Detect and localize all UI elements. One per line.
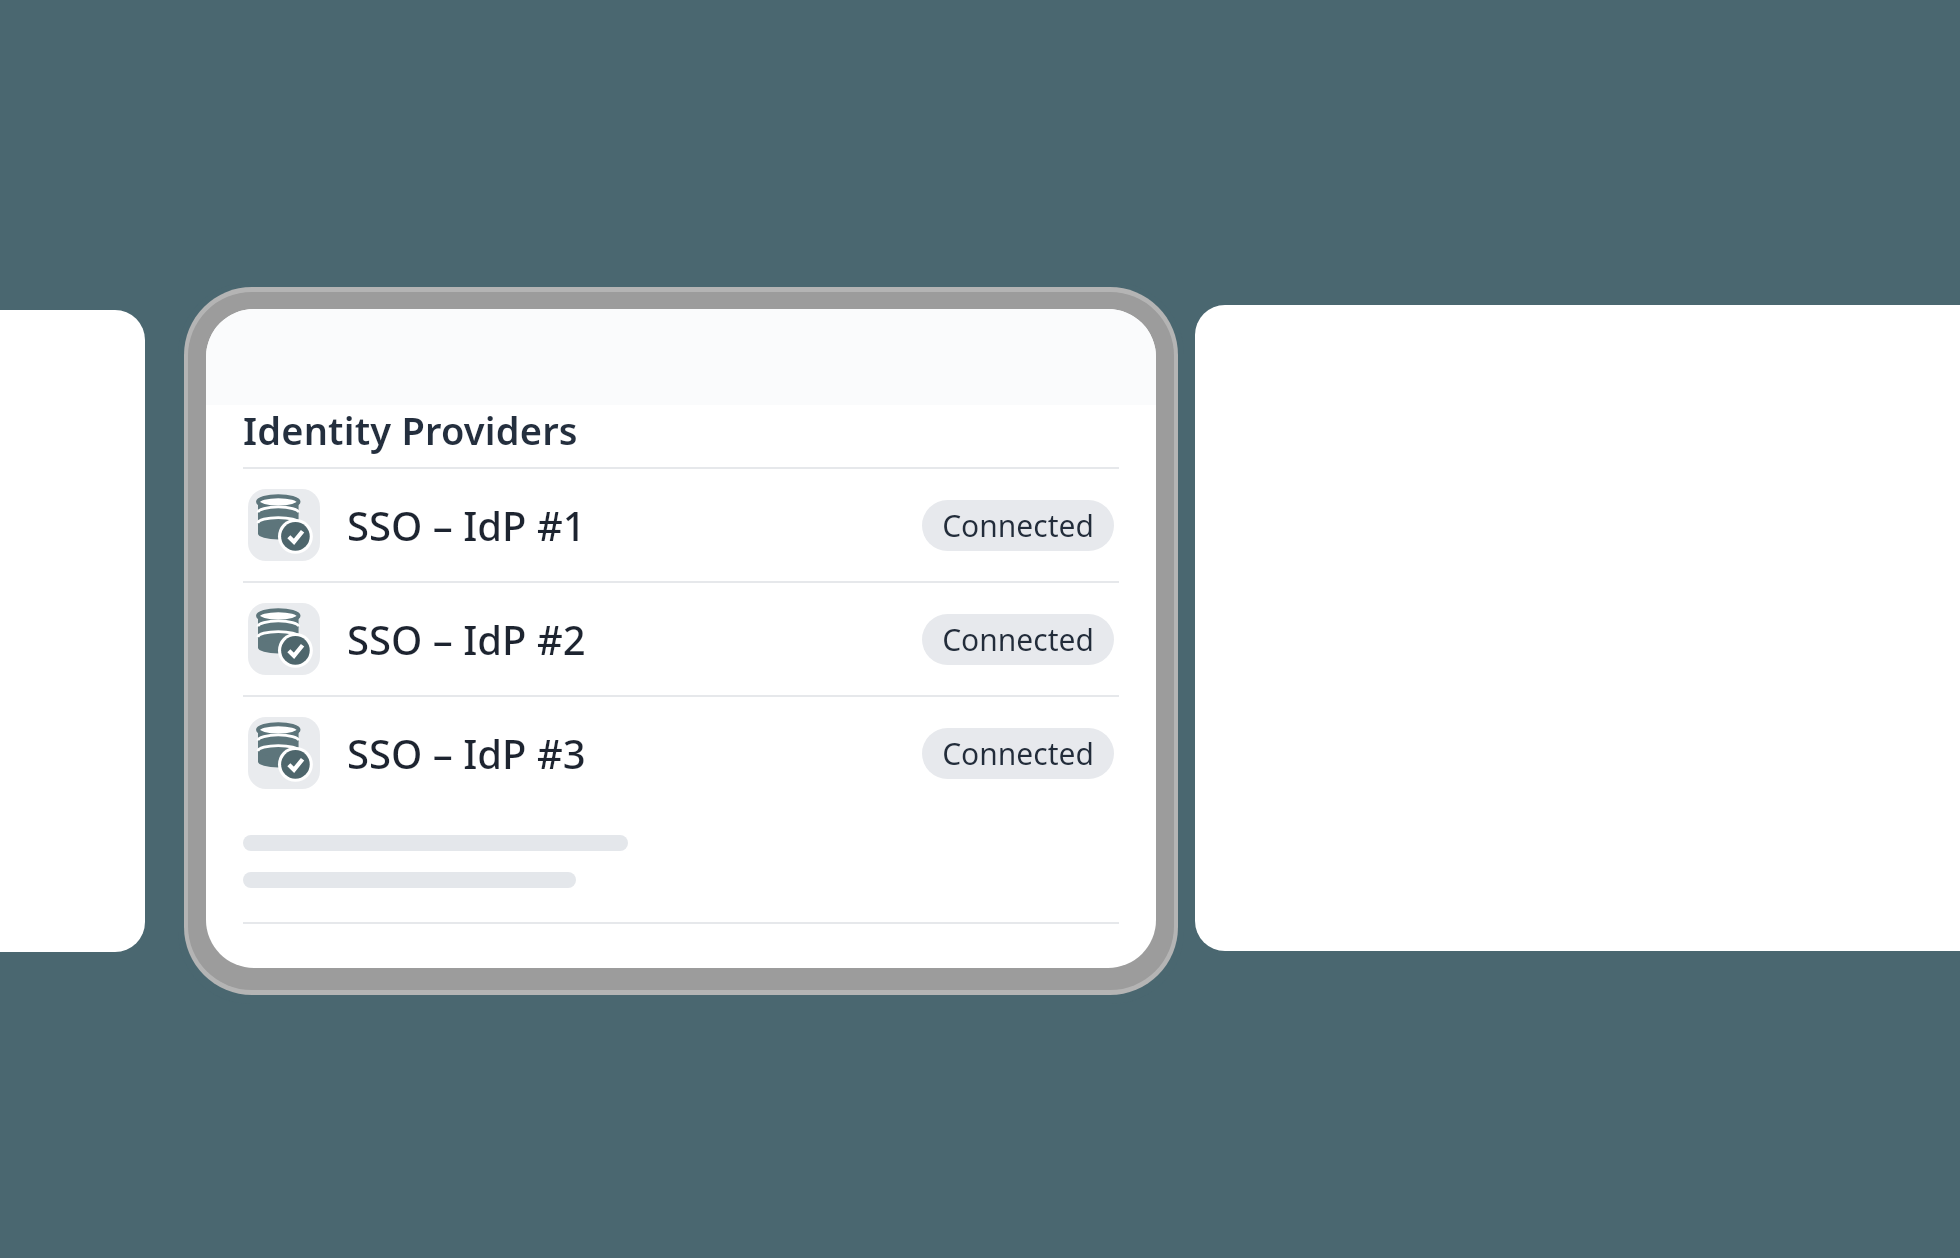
staticText: Connected: [942, 619, 1094, 660]
other: Connected identity provider: [258, 499, 310, 551]
button[interactable]: Connected identity provider: [206, 469, 1156, 581]
other: Connected identity provider: [258, 727, 310, 779]
staticText: SSO – IdP #1: [347, 498, 586, 552]
staticText: Connected: [942, 733, 1094, 774]
staticText: SSO – IdP #2: [347, 612, 586, 666]
button[interactable]: Connected: [922, 500, 1114, 551]
staticText: Identity Providers: [243, 404, 578, 456]
staticText: SSO – IdP #3: [347, 726, 586, 780]
button[interactable]: Connected identity provider: [206, 583, 1156, 695]
button[interactable]: Connected: [922, 728, 1114, 779]
staticText: Connected: [942, 505, 1094, 546]
button[interactable]: Connected: [922, 614, 1114, 665]
other: Connected identity provider: [258, 613, 310, 665]
button[interactable]: Connected identity provider: [206, 697, 1156, 809]
